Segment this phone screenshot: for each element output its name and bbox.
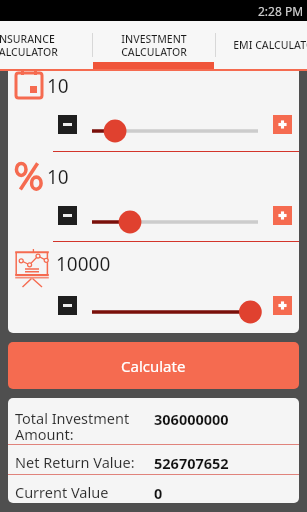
staticText: Net Return Value: bbox=[15, 452, 135, 472]
button[interactable]: Increase bbox=[273, 206, 292, 225]
staticText: 0 bbox=[154, 483, 163, 503]
button[interactable]: EMI CALCULATOR bbox=[216, 21, 307, 69]
button[interactable]: Calculate bbox=[8, 342, 299, 389]
button[interactable]: INVESTMENT CALCULATOR bbox=[93, 21, 214, 69]
button[interactable]: Decrease bbox=[58, 296, 77, 315]
staticText: 10 bbox=[47, 164, 69, 190]
staticText: Calculate bbox=[121, 356, 186, 376]
button[interactable]: Decrease bbox=[58, 115, 77, 134]
staticText: Current Value bbox=[15, 482, 109, 502]
staticText: 10000 bbox=[56, 251, 111, 277]
button[interactable]: INSURANCE CALCULATOR bbox=[0, 21, 93, 69]
staticText: 306000000 bbox=[154, 409, 229, 429]
staticText: 10 bbox=[47, 73, 69, 99]
staticText: EMI CALCULATOR bbox=[233, 38, 307, 52]
staticText: INVESTMENT CALCULATOR bbox=[121, 32, 187, 59]
button[interactable]: Increase bbox=[273, 115, 292, 134]
staticText: 2:28 PM bbox=[258, 3, 304, 19]
button[interactable]: Decrease bbox=[58, 206, 77, 225]
staticText: Total Investment Amount: bbox=[15, 408, 130, 444]
staticText: INSURANCE CALCULATOR bbox=[0, 32, 58, 59]
button[interactable]: Increase bbox=[273, 296, 292, 315]
staticText: 526707652 bbox=[154, 453, 229, 473]
